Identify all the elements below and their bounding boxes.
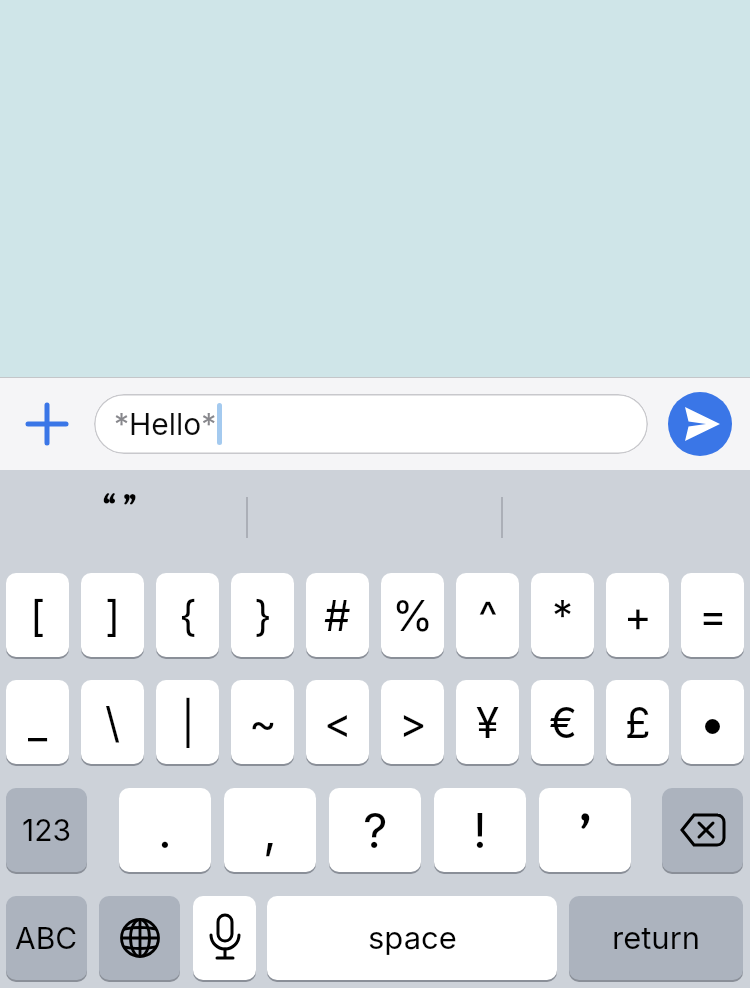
button[interactable]: € <box>531 680 594 764</box>
button[interactable]: * <box>531 573 594 657</box>
button[interactable]: ~ <box>231 680 294 764</box>
button[interactable] <box>193 896 256 980</box>
button[interactable]: # <box>306 573 369 657</box>
button[interactable]: > <box>381 680 444 764</box>
staticText: * <box>552 590 574 641</box>
staticText: + <box>624 590 652 641</box>
button[interactable]: % <box>381 573 444 657</box>
staticText: £ <box>625 697 651 748</box>
button[interactable]: *Hello* <box>94 394 648 454</box>
staticText: ABC <box>15 920 78 956</box>
button[interactable]: ] <box>81 573 144 657</box>
button[interactable]: . <box>119 788 211 872</box>
button[interactable] <box>28 405 66 443</box>
staticText: _ <box>28 697 48 748</box>
button[interactable]: ^ <box>456 573 519 657</box>
button[interactable]: space <box>267 896 557 980</box>
button[interactable]: ’ <box>539 788 631 872</box>
staticText: # <box>324 590 351 641</box>
button[interactable]: | <box>156 680 219 764</box>
button[interactable]: + <box>606 573 669 657</box>
staticText: 123 <box>22 812 72 848</box>
staticText: . <box>158 801 172 859</box>
button[interactable]: £ <box>606 680 669 764</box>
button[interactable]: ! <box>434 788 526 872</box>
button[interactable]: • <box>681 680 744 764</box>
button[interactable] <box>99 896 180 980</box>
staticText: > <box>399 697 427 748</box>
staticText: • <box>699 693 726 751</box>
staticText: } <box>254 590 272 641</box>
staticText: ~ <box>249 697 277 748</box>
button[interactable]: , <box>224 788 316 872</box>
button[interactable]: _ <box>6 680 69 764</box>
button[interactable]: \ <box>81 680 144 764</box>
button[interactable]: 123 <box>6 788 87 872</box>
staticText: , <box>263 801 277 859</box>
staticText: ¥ <box>476 697 500 748</box>
button[interactable] <box>668 392 732 456</box>
button[interactable]: = <box>681 573 744 657</box>
staticText: [ <box>30 590 46 641</box>
staticText: = <box>699 590 727 641</box>
staticText: € <box>549 697 577 748</box>
staticText: ^ <box>478 590 498 641</box>
staticText: return <box>612 919 701 957</box>
button[interactable] <box>662 788 743 872</box>
staticText: space <box>368 919 457 957</box>
staticText: \ <box>105 697 121 748</box>
staticText: < <box>324 697 352 748</box>
staticText: | <box>181 697 195 748</box>
button[interactable]: ABC <box>6 896 87 980</box>
staticText: ’ <box>580 810 590 866</box>
button[interactable]: { <box>156 573 219 657</box>
staticText: % <box>392 590 434 641</box>
button[interactable]: “ ” <box>103 490 136 529</box>
staticText: ? <box>363 801 388 859</box>
button[interactable]: ¥ <box>456 680 519 764</box>
staticText: *Hello* <box>114 406 217 442</box>
button[interactable]: return <box>569 896 743 980</box>
button[interactable]: ? <box>329 788 421 872</box>
button[interactable]: < <box>306 680 369 764</box>
button[interactable]: } <box>231 573 294 657</box>
staticText: { <box>179 590 197 641</box>
button[interactable]: [ <box>6 573 69 657</box>
staticText: ] <box>105 590 121 641</box>
staticText: ! <box>473 801 487 859</box>
